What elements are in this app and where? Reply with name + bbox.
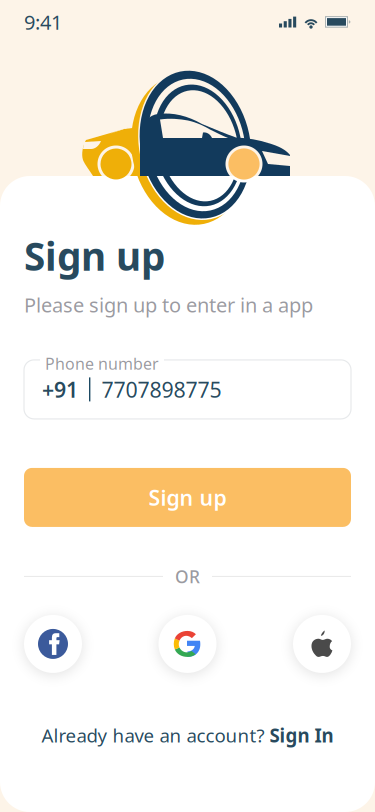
staticText: Sign In	[269, 723, 333, 748]
staticText: Already have an account?	[41, 723, 264, 748]
staticText: Phone number	[45, 353, 159, 374]
staticText: Please sign up to enter in a app	[24, 291, 313, 318]
staticText: 7707898775	[101, 375, 221, 403]
button[interactable]: Already have an account?	[24, 723, 351, 748]
button[interactable]: Sign up	[24, 468, 351, 527]
staticText: Sign up	[148, 483, 226, 511]
staticText: Sign up	[24, 230, 165, 281]
button[interactable]: Sign up with Google	[158, 615, 216, 673]
staticText: +91	[42, 375, 78, 403]
staticText: 9:41	[24, 9, 62, 35]
button[interactable]: Sign up with Apple	[293, 615, 351, 673]
staticText: OR	[175, 565, 200, 588]
button[interactable]: Sign up with Facebook	[24, 615, 82, 673]
